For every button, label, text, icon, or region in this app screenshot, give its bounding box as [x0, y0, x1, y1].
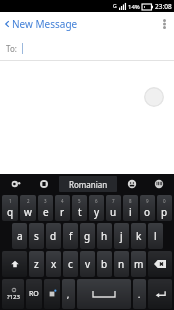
- button[interactable]: x: [46, 251, 61, 277]
- button[interactable]: d: [46, 223, 61, 249]
- button[interactable]: [148, 279, 172, 309]
- button[interactable]: [77, 279, 131, 309]
- button[interactable]: z: [29, 251, 44, 277]
- staticText: z: [34, 257, 39, 271]
- staticText: 14%: [128, 3, 140, 11]
- button[interactable]: 3: [38, 195, 53, 221]
- button[interactable]: Contact avatar: [144, 87, 164, 107]
- button[interactable]: ,: [62, 279, 75, 309]
- staticText: ,: [67, 289, 70, 300]
- staticText: f: [69, 229, 73, 243]
- staticText: 23:08: [155, 2, 172, 11]
- button[interactable]: [2, 251, 27, 277]
- button[interactable]: New Message: [3, 17, 78, 31]
- staticText: q: [7, 205, 14, 219]
- button[interactable]: ?123: [2, 279, 24, 309]
- staticText: n: [118, 257, 125, 271]
- staticText: 0: [163, 198, 166, 204]
- button[interactable]: Voice input: [2, 174, 30, 194]
- button[interactable]: 6: [89, 195, 104, 221]
- button[interactable]: [148, 251, 172, 277]
- button[interactable]: 0: [157, 195, 172, 221]
- button[interactable]: 9: [140, 195, 155, 221]
- staticText: 2: [27, 198, 30, 204]
- staticText: k: [136, 229, 142, 243]
- staticText: g: [84, 229, 91, 243]
- staticText: x: [51, 257, 57, 271]
- staticText: i: [129, 205, 132, 219]
- button[interactable]: .: [133, 279, 146, 309]
- staticText: j: [120, 229, 123, 243]
- button[interactable]: v: [80, 251, 95, 277]
- button[interactable]: Romanian: [59, 176, 117, 192]
- button[interactable]: k: [131, 223, 146, 249]
- staticText: h: [101, 229, 108, 243]
- button[interactable]: RO: [26, 279, 42, 309]
- button[interactable]: 7: [106, 195, 121, 221]
- staticText: m: [134, 257, 144, 271]
- button[interactable]: Emoji: [118, 174, 145, 194]
- staticText: u: [110, 205, 117, 219]
- staticText: New Message: [12, 17, 78, 31]
- button[interactable]: 2: [20, 195, 36, 221]
- staticText: b: [101, 257, 108, 271]
- button[interactable]: j: [114, 223, 129, 249]
- staticText: c: [68, 257, 73, 271]
- button[interactable]: 8: [123, 195, 138, 221]
- staticText: ?123: [7, 293, 20, 301]
- staticText: l: [154, 229, 157, 243]
- staticText: G: [113, 3, 117, 10]
- staticText: o: [144, 205, 151, 219]
- button[interactable]: h: [97, 223, 112, 249]
- button[interactable]: g: [80, 223, 95, 249]
- staticText: y: [94, 205, 100, 219]
- button[interactable]: c: [63, 251, 78, 277]
- button[interactable]: To:: [0, 36, 174, 60]
- staticText: RO: [29, 289, 39, 299]
- staticText: e: [43, 205, 49, 219]
- button[interactable]: [44, 279, 60, 309]
- staticText: 8: [129, 198, 132, 204]
- button[interactable]: b: [97, 251, 112, 277]
- staticText: 6: [95, 198, 98, 204]
- staticText: To:: [6, 43, 17, 54]
- staticText: a: [17, 229, 23, 243]
- staticText: 3: [44, 198, 47, 204]
- staticText: p: [161, 205, 168, 219]
- staticText: 5: [78, 198, 81, 204]
- button[interactable]: s: [29, 223, 44, 249]
- staticText: Romanian: [69, 179, 108, 190]
- button[interactable]: 1: [2, 195, 18, 221]
- staticText: r: [60, 205, 65, 219]
- button[interactable]: a: [12, 223, 27, 249]
- button[interactable]: 5: [72, 195, 87, 221]
- staticText: 1: [9, 198, 12, 204]
- staticText: v: [85, 257, 91, 271]
- staticText: t: [78, 205, 82, 219]
- button[interactable]: m: [131, 251, 146, 277]
- staticText: .: [138, 289, 141, 300]
- button[interactable]: Clipboard: [30, 174, 58, 194]
- button[interactable]: More options: [154, 14, 174, 34]
- button[interactable]: 4: [55, 195, 70, 221]
- staticText: 9: [146, 198, 149, 204]
- button[interactable]: f: [63, 223, 78, 249]
- button[interactable]: n: [114, 251, 129, 277]
- staticText: 7: [112, 198, 115, 204]
- staticText: s: [34, 229, 39, 243]
- staticText: d: [50, 229, 57, 243]
- staticText: 4: [61, 198, 64, 204]
- staticText: w: [24, 205, 32, 219]
- button[interactable]: Settings: [145, 174, 172, 194]
- button[interactable]: l: [148, 223, 163, 249]
